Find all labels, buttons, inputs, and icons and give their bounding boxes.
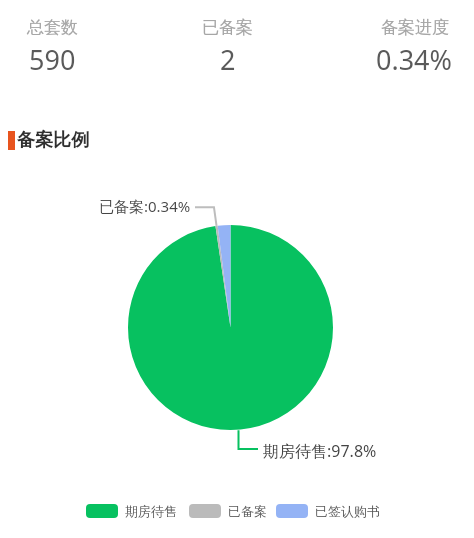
button[interactable]: 已签认购书 [276, 503, 380, 519]
staticText: 590 [29, 41, 76, 78]
button[interactable]: 备案进度 [376, 17, 453, 78]
staticText: 2 [220, 41, 236, 78]
staticText: 期房待售 [125, 503, 177, 519]
staticText: 已备案 [228, 503, 267, 519]
staticText: 已签认购书 [315, 503, 380, 519]
button[interactable]: 期房待售 [86, 503, 177, 519]
staticText: 已备案:0.34% [99, 196, 191, 216]
staticText: 期房待售:97.8% [263, 440, 377, 462]
button[interactable]: 总套数 [27, 17, 78, 78]
other: 备案比例饼图 [0, 0, 474, 538]
staticText: 0.34% [376, 41, 453, 78]
staticText: 总套数 [27, 17, 78, 38]
button[interactable]: 已备案 [202, 17, 253, 78]
staticText: 已备案 [202, 17, 253, 38]
button[interactable]: 已备案 [189, 503, 267, 519]
staticText: 备案比例 [17, 129, 89, 152]
button[interactable]: 备案比例 [8, 129, 89, 152]
staticText: 备案进度 [381, 17, 449, 38]
